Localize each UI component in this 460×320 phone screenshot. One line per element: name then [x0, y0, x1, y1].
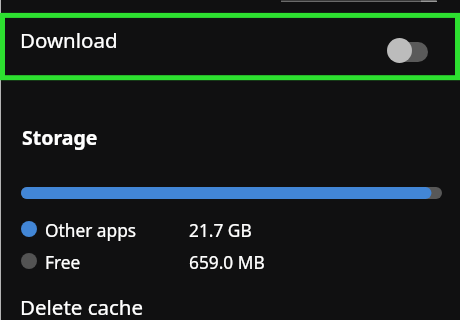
button[interactable]: Delete cache: [0, 285, 460, 320]
staticText: 659.0 MB: [189, 251, 265, 275]
button[interactable]: Free: [0, 248, 460, 278]
button[interactable]: Other apps: [0, 216, 460, 246]
staticText: Download: [20, 26, 118, 54]
other: Storage usage bar: [21, 187, 442, 199]
staticText: 21.7 GB: [189, 219, 252, 243]
button[interactable]: Previous setting row: [0, 0, 460, 13]
button[interactable]: Download: [0, 13, 460, 80]
staticText: Delete cache: [20, 293, 144, 320]
staticText: Free: [45, 251, 81, 275]
staticText: Other apps: [45, 219, 137, 243]
staticText: Storage: [22, 124, 98, 151]
button[interactable]: Download switch, off: [385, 38, 428, 63]
